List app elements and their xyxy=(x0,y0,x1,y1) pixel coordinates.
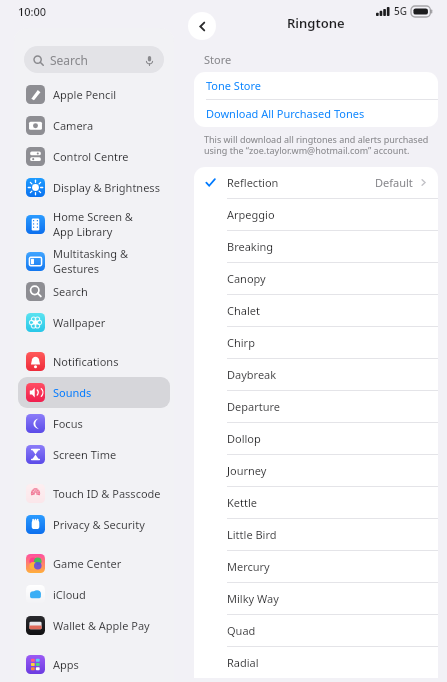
staticText: Radial xyxy=(227,655,259,670)
button[interactable]: Canopy xyxy=(194,263,438,294)
button[interactable]: Journey xyxy=(194,455,438,486)
staticText: Apple Pencil xyxy=(53,87,117,102)
staticText: Screen Time xyxy=(53,447,117,462)
button[interactable]: Kettle xyxy=(194,487,438,518)
button[interactable]: Chalet xyxy=(194,295,438,326)
button[interactable]: Search xyxy=(24,46,164,73)
button[interactable]: Arpeggio xyxy=(194,199,438,230)
staticText: Home Screen & xyxy=(53,209,133,224)
staticText: Focus xyxy=(53,416,83,431)
staticText: Apps xyxy=(53,657,79,672)
staticText: Reflection xyxy=(227,175,279,190)
button[interactable]: Daybreak xyxy=(194,359,438,390)
button[interactable]: Back xyxy=(188,12,216,40)
button[interactable]: Game Center xyxy=(18,548,170,579)
staticText: Multitasking & Gestures xyxy=(53,246,162,276)
button[interactable]: Wallpaper xyxy=(18,307,170,338)
staticText: App Library xyxy=(53,224,113,239)
button[interactable]: Mercury xyxy=(194,551,438,582)
button[interactable]: Radial xyxy=(194,647,438,678)
staticText: Arpeggio xyxy=(227,207,275,222)
staticText: Tone Store xyxy=(206,78,262,93)
staticText: Breaking xyxy=(227,239,274,254)
button[interactable]: Wallet & Apple Pay xyxy=(18,610,170,641)
staticText: Wallet & Apple Pay xyxy=(53,618,150,633)
staticText: iCloud xyxy=(53,587,86,602)
staticText: Touch ID & Passcode xyxy=(53,486,161,501)
button[interactable]: Dollop xyxy=(194,423,438,454)
staticText: Store xyxy=(204,52,232,67)
staticText: 10:00 xyxy=(18,4,47,19)
staticText: Default xyxy=(375,175,413,190)
staticText: Control Centre xyxy=(53,149,129,164)
button[interactable]: Focus xyxy=(18,408,170,439)
staticText: Chalet xyxy=(227,303,260,318)
staticText: Wallpaper xyxy=(53,315,106,330)
button[interactable]: Milky Way xyxy=(194,583,438,614)
staticText: Dollop xyxy=(227,431,261,446)
staticText: 5G xyxy=(394,4,407,18)
button[interactable]: Touch ID & Passcode xyxy=(18,478,170,509)
button[interactable]: Display & Brightness xyxy=(18,172,170,203)
button[interactable]: Camera xyxy=(18,110,170,141)
staticText: Mercury xyxy=(227,559,270,574)
staticText: Journey xyxy=(227,463,267,478)
button[interactable]: Little Bird xyxy=(194,519,438,550)
button[interactable]: iCloud xyxy=(18,579,170,610)
staticText: Sounds xyxy=(53,385,92,400)
button[interactable]: Privacy & Security xyxy=(18,509,170,540)
button[interactable]: Quad xyxy=(194,615,438,646)
button[interactable]: Home Screen & xyxy=(18,203,170,245)
staticText: Daybreak xyxy=(227,367,277,382)
staticText: Departure xyxy=(227,399,281,414)
button[interactable]: Apps xyxy=(18,649,170,680)
staticText: Ringtone xyxy=(287,14,345,32)
button[interactable]: Notifications xyxy=(18,346,170,377)
button[interactable]: Apple Pencil xyxy=(18,79,170,110)
staticText: Download All Purchased Tones xyxy=(206,106,365,121)
staticText: Chirp xyxy=(227,335,255,350)
staticText: Display & Brightness xyxy=(53,180,160,195)
staticText: Notifications xyxy=(53,354,119,369)
button[interactable]: Control Centre xyxy=(18,141,170,172)
button[interactable]: Chirp xyxy=(194,327,438,358)
button[interactable]: Multitasking & Gestures xyxy=(18,245,170,276)
button[interactable]: Search xyxy=(18,276,170,307)
button[interactable]: Screen Time xyxy=(18,439,170,470)
staticText: Quad xyxy=(227,623,256,638)
staticText: Search xyxy=(53,284,88,299)
staticText: Privacy & Security xyxy=(53,517,145,532)
staticText: Camera xyxy=(53,118,94,133)
staticText: This will download all ringtones and ale… xyxy=(204,133,431,157)
staticText: Kettle xyxy=(227,495,257,510)
staticText: Milky Way xyxy=(227,591,279,606)
button[interactable]: Reflection xyxy=(194,167,438,198)
staticText: Canopy xyxy=(227,271,266,286)
staticText: Little Bird xyxy=(227,527,277,542)
staticText: Game Center xyxy=(53,556,122,571)
staticText: Search xyxy=(50,52,88,68)
button[interactable]: Breaking xyxy=(194,231,438,262)
button[interactable]: Tone Store xyxy=(194,72,438,99)
button[interactable]: Download All Purchased Tones xyxy=(194,100,438,127)
button[interactable]: Departure xyxy=(194,391,438,422)
button[interactable]: Sounds xyxy=(18,377,170,408)
